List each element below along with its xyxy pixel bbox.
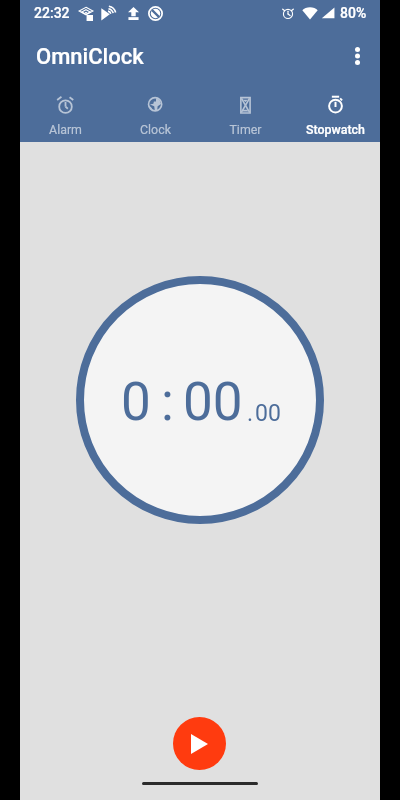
staticText: Timer [229,122,262,137]
button[interactable]: Timer [200,84,290,142]
button[interactable]: Stopwatch [290,84,380,142]
staticText: : [161,371,174,433]
staticText: 80% [340,5,367,21]
staticText: Stopwatch [306,122,365,137]
button[interactable]: Clock [110,84,200,142]
staticText: Clock [140,122,171,137]
staticText: Alarm [49,122,82,137]
staticText: . [247,400,254,427]
staticText: 22:32 [34,5,70,21]
staticText: 00 [255,400,281,427]
staticText: 00 [183,371,243,433]
button[interactable]: More options [337,36,377,76]
staticText: OmniClock [36,44,144,70]
button[interactable]: Alarm [20,84,110,142]
staticText: 0 [121,371,151,433]
button[interactable]: Start stopwatch [173,717,226,770]
